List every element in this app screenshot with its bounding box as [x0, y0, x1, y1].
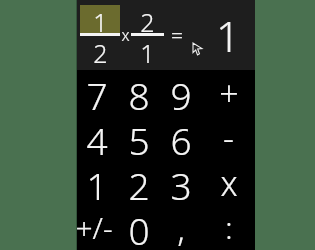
button[interactable]: 3: [160, 160, 202, 205]
staticText: 5: [128, 115, 150, 160]
button[interactable]: 5: [118, 115, 160, 160]
staticText: x: [121, 24, 130, 46]
button[interactable]: 9: [160, 70, 202, 115]
button[interactable]: x: [202, 160, 255, 205]
staticText: +/-: [75, 207, 113, 248]
button[interactable]: 6: [160, 115, 202, 160]
staticText: +: [219, 70, 239, 115]
button[interactable]: 2: [131, 5, 164, 65]
button[interactable]: -: [202, 115, 255, 160]
staticText: -: [223, 115, 234, 160]
staticText: 6: [170, 115, 192, 160]
staticText: 2: [93, 36, 108, 65]
staticText: 4: [86, 115, 108, 160]
button[interactable]: 2: [118, 160, 160, 205]
button[interactable]: 8: [118, 70, 160, 115]
staticText: 9: [170, 70, 192, 115]
button[interactable]: 4: [76, 115, 118, 160]
staticText: x: [220, 160, 238, 205]
staticText: 8: [128, 70, 150, 115]
staticText: 7: [86, 70, 108, 115]
staticText: =: [171, 21, 183, 50]
staticText: 1: [140, 36, 155, 65]
button[interactable]: ,: [160, 205, 202, 250]
staticText: :: [225, 207, 233, 248]
staticText: 2: [128, 160, 150, 205]
button[interactable]: +/-: [76, 205, 118, 250]
staticText: 1: [93, 5, 108, 33]
button[interactable]: 0: [118, 205, 160, 250]
staticText: 1: [216, 7, 240, 64]
button[interactable]: :: [202, 205, 255, 250]
staticText: 2: [140, 5, 155, 33]
staticText: 0: [128, 205, 150, 250]
button[interactable]: 1: [80, 5, 120, 65]
staticText: 3: [170, 160, 192, 205]
staticText: ,: [177, 205, 185, 250]
button[interactable]: 1: [76, 160, 118, 205]
staticText: 1: [86, 160, 108, 205]
button[interactable]: Expression 1/2 times 2/1 equals 1: [76, 0, 255, 70]
button[interactable]: 7: [76, 70, 118, 115]
button[interactable]: +: [202, 70, 255, 115]
